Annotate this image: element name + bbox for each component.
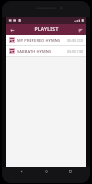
button[interactable]: Back: [17, 167, 26, 176]
button[interactable]: MY PREFERED HYMNS: [6, 35, 86, 45]
staticText: SABBATH HYMNS: [17, 49, 67, 54]
button[interactable]: Home: [42, 167, 51, 176]
staticText: 00:00 (18): [67, 49, 83, 54]
staticText: MY PREFERED HYMNS: [17, 38, 67, 43]
button[interactable]: Recent apps: [66, 167, 75, 176]
button[interactable]: SABBATH HYMNS: [6, 46, 86, 56]
button[interactable]: Sort: [76, 26, 84, 34]
button[interactable]: Back: [8, 26, 16, 34]
staticText: 00:00 (23): [67, 38, 83, 43]
staticText: PLAYLIST: [34, 26, 59, 33]
